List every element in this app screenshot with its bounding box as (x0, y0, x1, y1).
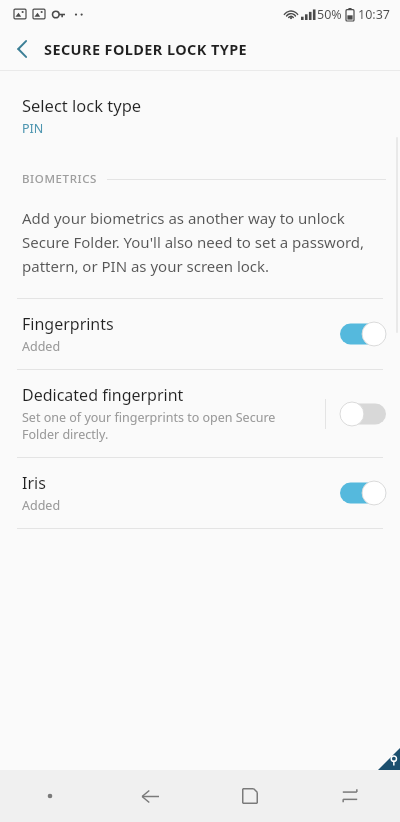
button[interactable]: Recents (300, 770, 400, 822)
staticText: Added (22, 338, 61, 355)
staticText: Add your biometrics as another way to un… (22, 208, 382, 276)
button[interactable]: Select lock type (0, 88, 400, 143)
button[interactable]: Iris (0, 458, 400, 528)
button[interactable]: Dedicated fingerprint (0, 370, 400, 457)
staticText: Added (22, 497, 61, 514)
staticText: 50% (317, 6, 342, 23)
staticText: PIN (22, 120, 44, 137)
staticText: Set one of your fingerprints to open Sec… (22, 409, 276, 443)
staticText: Dedicated fingerprint (22, 384, 184, 406)
button[interactable]: Menu (0, 770, 100, 822)
button[interactable]: Home (200, 770, 300, 822)
button[interactable]: Back (0, 28, 44, 70)
button[interactable]: On (340, 480, 386, 506)
button[interactable]: Back (100, 770, 200, 822)
staticText: Select lock type (22, 94, 142, 116)
staticText: 10:37 (358, 6, 390, 23)
button[interactable]: Fingerprints (0, 299, 400, 369)
staticText: BIOMETRICS (22, 171, 97, 187)
button[interactable]: Off (340, 401, 386, 427)
staticText: Fingerprints (22, 313, 114, 335)
staticText: Iris (22, 472, 46, 494)
staticText: SECURE FOLDER LOCK TYPE (44, 39, 248, 59)
button[interactable]: On (340, 321, 386, 347)
